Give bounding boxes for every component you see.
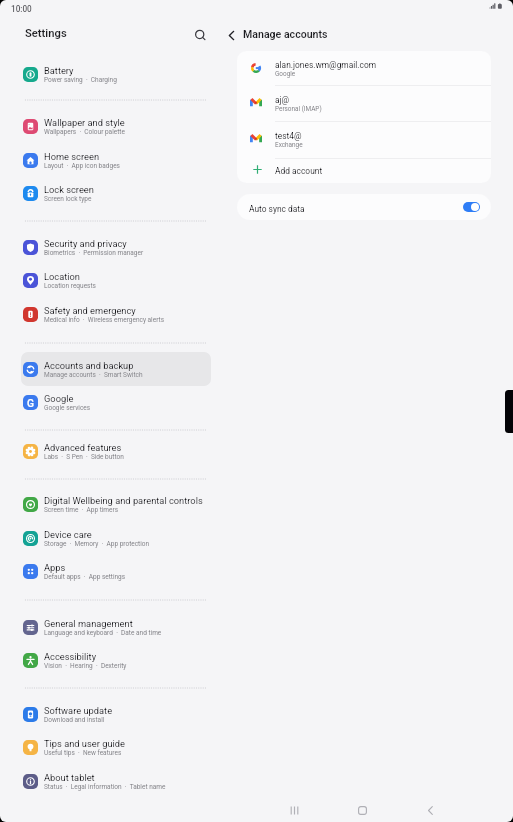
staticText: About tablet — [44, 772, 95, 783]
staticText: G — [27, 397, 35, 409]
button[interactable]: Back — [419, 799, 441, 821]
staticText: Wallpaper and style — [44, 117, 125, 128]
staticText: Battery — [44, 65, 74, 76]
button[interactable]: Search — [190, 25, 210, 45]
staticText: Lock screen — [44, 184, 94, 195]
staticText: Power saving · Charging — [44, 76, 117, 84]
staticText: Google — [275, 70, 296, 78]
button[interactable]: aj@ — [237, 85, 491, 120]
staticText: test4@ — [275, 131, 302, 141]
button[interactable]: Device care — [21, 521, 211, 555]
staticText: Google services — [44, 404, 91, 412]
button[interactable]: Add account — [237, 158, 491, 183]
staticText: Storage · Memory · App protection — [44, 540, 150, 548]
staticText: Add account — [275, 166, 323, 176]
staticText: Labs · S Pen · Side button — [44, 453, 124, 461]
staticText: Tips and user guide — [44, 738, 125, 749]
staticText: Manage accounts — [243, 28, 328, 40]
button[interactable]: G — [21, 385, 211, 419]
staticText: Language and keyboard · Date and time — [44, 629, 162, 637]
staticText: Wallpapers · Colour palette — [44, 128, 125, 136]
staticText: Default apps · App settings — [44, 573, 126, 581]
staticText: Auto sync data — [249, 204, 305, 214]
button[interactable]: Home screen — [21, 143, 211, 177]
staticText: Google — [44, 393, 74, 404]
button[interactable]: Advanced features — [21, 434, 211, 468]
staticText: Security and privacy — [44, 238, 127, 249]
button[interactable]: Home — [351, 799, 373, 821]
staticText: Location — [44, 271, 80, 282]
staticText: Accounts and backup — [44, 360, 134, 371]
button[interactable]: About tablet — [21, 764, 211, 798]
button[interactable]: Back — [221, 25, 241, 45]
staticText: Device care — [44, 529, 92, 540]
staticText: Layout · App icon badges — [44, 162, 120, 170]
staticText: Advanced features — [44, 442, 122, 453]
button[interactable]: Lock screen — [21, 176, 211, 210]
staticText: Digital Wellbeing and parental controls — [44, 495, 203, 506]
button[interactable]: Accounts and backup — [21, 352, 211, 386]
button[interactable]: Safety and emergency — [21, 297, 211, 331]
button[interactable]: General management — [21, 610, 211, 644]
staticText: Vision · Hearing · Dexterity — [44, 662, 127, 670]
staticText: aj@ — [275, 95, 290, 105]
button[interactable]: test4@ — [237, 121, 491, 156]
button[interactable]: Accessibility — [21, 643, 211, 677]
staticText: Biometrics · Permission manager — [44, 249, 144, 257]
staticText: Home screen — [44, 151, 100, 162]
staticText: Manage accounts · Smart Switch — [44, 371, 143, 379]
button[interactable]: Recent apps — [283, 799, 305, 821]
button[interactable]: Software update — [21, 697, 211, 731]
button[interactable]: Tips and user guide — [21, 730, 211, 764]
button[interactable]: alan.jones.wm@gmail.com — [237, 51, 491, 85]
staticText: Medical info · Wireless emergency alerts — [44, 316, 164, 324]
button[interactable]: Wallpaper and style — [21, 109, 211, 143]
staticText: Accessibility — [44, 651, 97, 662]
staticText: General management — [44, 618, 133, 629]
staticText: Download and install — [44, 716, 105, 724]
button[interactable]: Battery — [21, 57, 211, 91]
staticText: alan.jones.wm@gmail.com — [275, 60, 377, 70]
staticText: Location requests — [44, 282, 96, 290]
button[interactable]: Apps — [21, 554, 211, 588]
staticText: Personal (IMAP) — [275, 105, 322, 113]
button[interactable]: Digital Wellbeing and parental controls — [21, 487, 211, 521]
button[interactable]: Location — [21, 263, 211, 297]
button[interactable]: Security and privacy — [21, 230, 211, 264]
button[interactable]: Auto sync data — [237, 194, 491, 220]
staticText: Software update — [44, 705, 113, 716]
staticText: Screen lock type — [44, 195, 92, 203]
staticText: Exchange — [275, 141, 303, 149]
staticText: Safety and emergency — [44, 305, 136, 316]
staticText: Apps — [44, 562, 66, 573]
staticText: Status · Legal information · Tablet name — [44, 783, 166, 791]
staticText: Screen time · App timers — [44, 506, 119, 514]
staticText: Settings — [25, 27, 67, 40]
staticText: 10:00 — [11, 4, 32, 14]
staticText: Useful tips · New features — [44, 749, 122, 757]
